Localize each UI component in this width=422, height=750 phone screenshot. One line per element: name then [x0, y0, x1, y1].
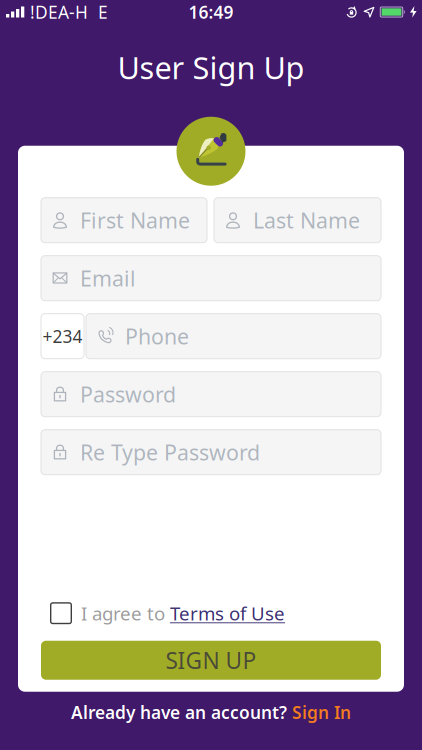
staticText: Phone: [125, 322, 189, 350]
staticText: User Sign Up: [117, 47, 304, 88]
staticText: 16:49: [188, 0, 233, 23]
button[interactable]: Sign In: [292, 701, 351, 724]
staticText: Terms of Use: [170, 601, 285, 626]
button[interactable]: Agree to Terms of Use: [50, 602, 72, 624]
staticText: Last Name: [253, 206, 360, 234]
button[interactable]: Password: [41, 372, 381, 417]
staticText: +234: [42, 325, 82, 348]
staticText: First Name: [80, 206, 190, 234]
staticText: Password: [80, 380, 176, 408]
staticText: I agree to: [81, 601, 165, 626]
button[interactable]: Re Type Password: [41, 430, 381, 475]
staticText: Email: [80, 264, 136, 292]
staticText: SIGN UP: [165, 645, 256, 675]
staticText: Already have an account?: [71, 701, 287, 724]
button[interactable]: Last Name: [214, 198, 381, 243]
button[interactable]: SIGN UP: [41, 641, 381, 680]
button[interactable]: Phone: [86, 314, 381, 359]
staticText: !DEA-H: [30, 0, 88, 23]
button[interactable]: +234: [41, 314, 84, 359]
staticText: Re Type Password: [80, 438, 260, 466]
button[interactable]: Terms of Use: [165, 601, 285, 626]
button[interactable]: First Name: [41, 198, 207, 243]
button[interactable]: Email: [41, 256, 381, 301]
staticText: E: [98, 0, 108, 23]
staticText: Sign In: [292, 701, 351, 724]
